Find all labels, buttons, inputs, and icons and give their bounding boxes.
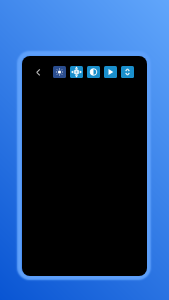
button[interactable]: Contrast <box>87 66 100 78</box>
button[interactable]: Resize <box>121 66 134 78</box>
button[interactable]: Move <box>70 66 83 78</box>
button[interactable]: Brightness <box>53 66 66 78</box>
button[interactable]: Play <box>104 66 117 78</box>
button[interactable]: Back <box>32 66 45 79</box>
